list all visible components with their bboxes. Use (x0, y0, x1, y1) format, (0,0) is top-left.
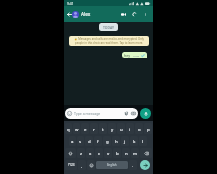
staticText: s (79, 138, 82, 144)
button[interactable]: k (130, 136, 138, 146)
button[interactable]: m (131, 148, 139, 158)
staticText: p (147, 126, 150, 132)
button[interactable]: Voice message (140, 108, 151, 119)
button[interactable]: i (126, 123, 134, 134)
button[interactable]: Space (96, 161, 128, 169)
button[interactable]: x (86, 148, 94, 158)
button[interactable]: Shift (65, 148, 76, 158)
staticText: q (67, 126, 70, 132)
button[interactable]: n (122, 148, 130, 158)
button[interactable]: d (85, 136, 93, 146)
button[interactable]: w (73, 123, 80, 134)
staticText: j (124, 138, 126, 144)
staticText: 9:41 (67, 1, 74, 6)
button[interactable]: h (112, 136, 120, 146)
staticText: , (81, 163, 83, 168)
button[interactable]: g (103, 136, 111, 146)
button[interactable]: f (94, 136, 102, 146)
button[interactable]: Call (129, 6, 140, 22)
staticText: r (93, 126, 95, 132)
button[interactable]: Type a message (65, 108, 138, 119)
button[interactable]: 🔒 Messages and calls are end-to-end encr… (69, 36, 149, 46)
staticText: ?123 (68, 163, 75, 167)
button[interactable]: e (81, 123, 89, 134)
staticText: n (125, 150, 128, 156)
staticText: a (71, 138, 74, 144)
staticText: v (107, 150, 110, 156)
button[interactable]: c (95, 148, 103, 158)
staticText: 🔒 Messages and calls are end-to-end encr… (72, 37, 146, 45)
staticText: y (111, 126, 114, 132)
button[interactable]: a (69, 136, 76, 146)
staticText: b (116, 150, 119, 156)
staticText: o (138, 126, 141, 132)
button[interactable]: q (65, 123, 72, 134)
button[interactable]: z (77, 148, 85, 158)
staticText: . (132, 163, 134, 168)
button[interactable]: Send (138, 160, 152, 170)
button[interactable]: v (104, 148, 112, 158)
button[interactable]: TODAY (99, 23, 118, 31)
staticText: e (84, 126, 87, 132)
button[interactable]: Attach (124, 111, 129, 116)
button[interactable]: t (99, 123, 107, 134)
button[interactable]: Camera (131, 111, 136, 116)
button[interactable]: s (77, 136, 84, 146)
button[interactable]: y (108, 123, 116, 134)
button[interactable]: b (113, 148, 121, 158)
button[interactable]: l (139, 136, 147, 146)
button[interactable]: Video call (118, 6, 129, 22)
button[interactable]: , (78, 160, 86, 170)
staticText: g (106, 138, 109, 144)
button[interactable]: o (135, 123, 143, 134)
staticText: i (129, 126, 131, 132)
staticText: hey (124, 53, 131, 58)
staticText: 12:04 (133, 54, 140, 57)
button[interactable]: r (90, 123, 98, 134)
button[interactable]: Contact photo (72, 11, 79, 18)
staticText: h (115, 138, 118, 144)
button[interactable]: ?123 (65, 160, 77, 170)
button[interactable]: Back (66, 11, 72, 17)
button[interactable]: hey (122, 52, 147, 58)
staticText: l (142, 138, 144, 144)
staticText: Alex (81, 11, 118, 17)
staticText: m (133, 150, 138, 156)
button[interactable]: More options (140, 6, 151, 22)
staticText: TODAY (103, 25, 114, 30)
staticText: k (133, 138, 136, 144)
staticText: w (75, 126, 79, 132)
button[interactable]: . (129, 160, 137, 170)
staticText: Type a message (74, 111, 101, 116)
button[interactable]: p (144, 123, 152, 134)
staticText: English (107, 163, 117, 167)
staticText: x (89, 150, 92, 156)
staticText: t (102, 126, 104, 132)
staticText: c (98, 150, 101, 156)
staticText: f (97, 138, 99, 144)
staticText: u (120, 126, 123, 132)
button[interactable]: j (121, 136, 129, 146)
staticText: d (88, 138, 91, 144)
button[interactable]: u (117, 123, 125, 134)
button[interactable]: Backspace (140, 148, 152, 158)
staticText: z (80, 150, 83, 156)
button[interactable]: Emoji (87, 160, 95, 170)
